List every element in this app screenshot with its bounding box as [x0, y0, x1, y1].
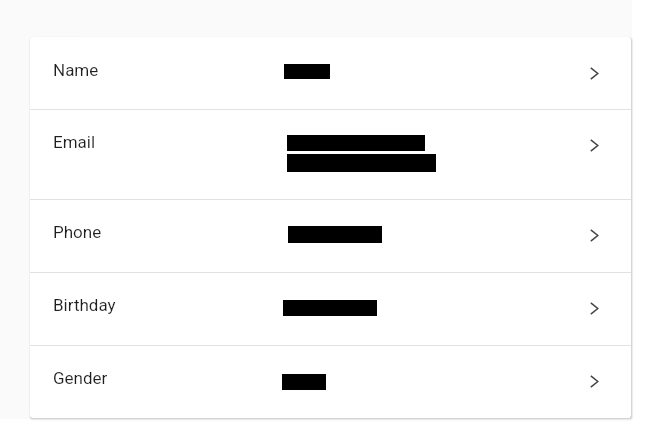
button[interactable]: Birthday	[30, 272, 631, 345]
staticText: Birthday	[53, 295, 116, 315]
staticText: Phone	[53, 222, 102, 242]
button[interactable]: Gender	[30, 345, 631, 418]
button[interactable]: Name	[30, 37, 631, 109]
button[interactable]: Email	[30, 109, 631, 199]
button[interactable]: Phone	[30, 199, 631, 272]
staticText: Email	[53, 132, 96, 152]
staticText: Gender	[53, 368, 108, 388]
staticText: Name	[53, 60, 99, 80]
